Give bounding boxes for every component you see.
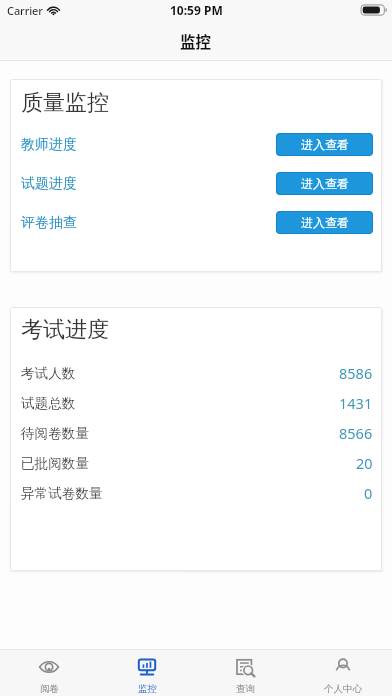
staticText: 进入查看 — [301, 137, 349, 152]
staticText: 进入查看 — [301, 215, 349, 230]
staticText: 8586 — [339, 363, 373, 383]
button[interactable]: 进入查看 — [276, 172, 373, 195]
button[interactable]: 阅卷 — [0, 650, 98, 696]
staticText: 已批阅数量 — [21, 455, 89, 472]
button[interactable]: 查询 — [196, 650, 294, 696]
staticText: 进入查看 — [301, 176, 349, 191]
staticText: 个人中心 — [324, 683, 362, 695]
staticText: 评卷抽查 — [21, 214, 77, 232]
staticText: 监控 — [180, 30, 212, 52]
button[interactable]: 监控 — [98, 650, 196, 696]
staticText: 1431 — [339, 393, 373, 413]
staticText: 20 — [356, 453, 373, 473]
staticText: 0 — [364, 483, 373, 503]
staticText: 教师进度 — [21, 136, 77, 154]
staticText: 监控 — [138, 683, 157, 695]
staticText: 查询 — [236, 683, 255, 695]
staticText: 阅卷 — [40, 683, 59, 695]
staticText: 异常试卷数量 — [21, 485, 103, 502]
staticText: 试题进度 — [21, 175, 77, 193]
button[interactable]: 进入查看 — [276, 211, 373, 234]
staticText: Carrier — [7, 3, 43, 18]
button[interactable]: 个人中心 — [294, 650, 392, 696]
staticText: 考试进度 — [21, 316, 109, 344]
staticText: 10:59 PM — [170, 2, 223, 18]
staticText: 质量监控 — [21, 89, 109, 117]
staticText: 8566 — [339, 423, 373, 443]
staticText: 待阅卷数量 — [21, 425, 89, 442]
button[interactable]: 进入查看 — [276, 133, 373, 156]
staticText: 考试人数 — [21, 365, 76, 382]
staticText: 试题总数 — [21, 395, 76, 412]
